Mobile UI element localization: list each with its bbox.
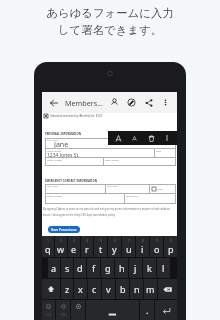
staticText: f (92, 262, 96, 274)
button[interactable]: 12# (42, 300, 55, 320)
staticText: 12# (45, 312, 52, 317)
staticText: 3 (73, 238, 75, 243)
staticText: z (65, 283, 70, 295)
button[interactable]: z (61, 279, 73, 299)
staticText: n (134, 283, 140, 295)
staticText: 4 (86, 238, 88, 243)
button[interactable]: 4 (81, 236, 93, 257)
button[interactable]: g (101, 258, 114, 278)
staticText: p (168, 243, 174, 255)
staticText: y (112, 243, 117, 255)
button[interactable]: l (157, 258, 170, 278)
button[interactable]: 3 (68, 236, 80, 257)
button[interactable]: 2 (55, 236, 67, 257)
button[interactable]: 7 (122, 236, 135, 257)
button[interactable]: More options (157, 92, 174, 113)
button[interactable]: More options (160, 131, 174, 145)
staticText: v (106, 283, 111, 295)
staticText: Relationship (126, 195, 139, 198)
staticText: First Name (47, 139, 58, 142)
button[interactable]: a (48, 258, 60, 278)
button[interactable]: Shift (42, 279, 60, 299)
staticText: 7 (128, 238, 130, 243)
button[interactable]: n (130, 279, 143, 299)
staticText: . (146, 304, 149, 316)
button[interactable]: . (140, 300, 154, 320)
staticText: a (51, 262, 57, 274)
button[interactable]: 6 (108, 236, 121, 257)
button[interactable]: s (61, 258, 73, 278)
staticText: d (77, 262, 83, 274)
staticText: e (71, 243, 77, 255)
button[interactable]: 5 (94, 236, 107, 257)
staticText: 6 (114, 238, 116, 243)
button[interactable]: k (143, 258, 156, 278)
staticText: Jane (54, 140, 69, 150)
staticText: 1234 Jones St. (47, 152, 80, 159)
staticText: San Francisco (51, 227, 77, 232)
staticText: t (99, 243, 103, 255)
button[interactable]: 1 (42, 236, 54, 257)
staticText: EN (61, 312, 66, 317)
staticText: u (126, 243, 132, 255)
staticText: j (134, 262, 137, 274)
button[interactable]: EN (56, 300, 70, 320)
staticText: PERSONAL INFORMATION (45, 132, 81, 136)
button[interactable]: v (102, 279, 115, 299)
staticText: Male (157, 187, 163, 190)
button[interactable]: Delete (144, 131, 158, 145)
button[interactable]: j (129, 258, 142, 278)
staticText: 0 (170, 238, 172, 243)
staticText: o (154, 243, 160, 255)
staticText: m (146, 283, 155, 295)
staticText: By signing I Agree to enter at my own ri… (43, 207, 176, 217)
button[interactable]: c (88, 279, 101, 299)
button[interactable]: Increase text size (111, 131, 125, 145)
button[interactable]: b (116, 279, 129, 299)
button[interactable]: m (144, 279, 157, 299)
button[interactable]: x (74, 279, 87, 299)
button[interactable]: h (115, 258, 128, 278)
button[interactable]: San Francisco (48, 226, 80, 233)
staticText: i (141, 243, 144, 255)
staticText: Phone Number (47, 159, 63, 162)
staticText: k (147, 262, 152, 274)
button[interactable]: , (71, 300, 85, 320)
staticText: 8 (142, 238, 144, 243)
staticText: b (120, 283, 126, 295)
staticText: h (119, 262, 125, 274)
staticText: Email Address (105, 159, 119, 162)
staticText: c (92, 283, 97, 295)
staticText: 1 (47, 238, 49, 243)
button[interactable]: Assign to person (106, 92, 123, 113)
staticText: x (78, 283, 83, 295)
staticText: 2 (60, 238, 62, 243)
staticText: 5 (100, 238, 102, 243)
staticText: q (45, 243, 51, 255)
staticText: r (85, 243, 89, 255)
button[interactable]: Enter (155, 300, 177, 320)
button[interactable]: Sign (123, 92, 140, 113)
staticText: Individual membership (Monthly fee: $125… (50, 114, 103, 118)
staticText: 9 (156, 238, 158, 243)
staticText: Members... (65, 98, 103, 108)
button[interactable]: Decrease text size (127, 131, 141, 145)
staticText: あらゆるフォームに入力して署名できます。 (42, 6, 178, 37)
button[interactable]: Share (140, 92, 157, 113)
button[interactable]: 9 (150, 236, 163, 257)
staticText: ▁ (109, 305, 116, 315)
staticText: EMERGENCY CONTACT INFORMATION (45, 179, 97, 183)
staticText: s (65, 262, 70, 274)
button[interactable]: d (74, 258, 86, 278)
staticText: Home Address (47, 150, 62, 153)
button[interactable]: Backspace (158, 279, 177, 299)
button[interactable]: 8 (136, 236, 149, 257)
staticText: Phone Number (47, 195, 63, 198)
button[interactable]: ▁ (86, 300, 139, 320)
staticText: g (105, 262, 111, 274)
staticText: First Name (47, 185, 58, 188)
button[interactable]: Back (42, 92, 65, 113)
button[interactable]: f (87, 258, 100, 278)
staticText: State (156, 150, 162, 153)
button[interactable]: 0 (164, 236, 177, 257)
